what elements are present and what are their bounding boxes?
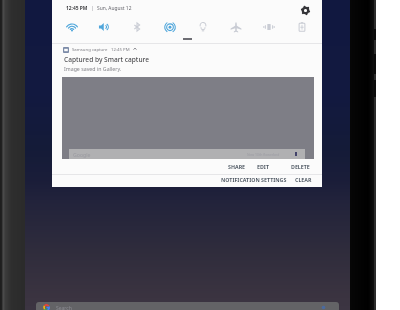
button[interactable]: Vibration [252,17,285,37]
button[interactable]: NOTIFICATION SETTINGS [218,174,290,185]
staticText: SHARE [228,163,246,170]
button[interactable]: Settings [294,0,316,21]
staticText: EDIT [257,163,269,170]
button[interactable]: SHARE [225,161,249,172]
button[interactable]: DELETE [288,161,313,172]
button[interactable]: Mobile hotspot [153,17,186,37]
button[interactable]: CLEAR [292,174,315,185]
staticText: Now 10th flowerbed [247,152,280,157]
button[interactable]: Power saving [285,17,318,37]
button[interactable]: Wi-Fi [56,17,88,37]
staticText: 12:45 PM [66,5,88,12]
staticText: 12:45 PM [111,46,130,52]
staticText: Google [73,151,91,158]
button[interactable]: Flashlight [186,17,219,37]
staticText: Search [56,305,72,310]
button[interactable]: EDIT [254,161,272,172]
button[interactable]: Bluetooth [120,17,153,37]
staticText: | [91,5,94,12]
staticText: Image saved in Gallery. [64,65,122,72]
button[interactable]: Airplane mode [219,17,252,37]
staticText: NOTIFICATION SETTINGS [221,176,287,183]
staticText: DELETE [291,163,310,170]
staticText: Captured by Smart capture [64,55,149,64]
staticText: Sun, August 12 [97,5,132,12]
staticText: CLEAR [295,176,312,183]
staticText: Samsung capture [72,46,108,52]
button[interactable]: Sound [88,17,120,37]
